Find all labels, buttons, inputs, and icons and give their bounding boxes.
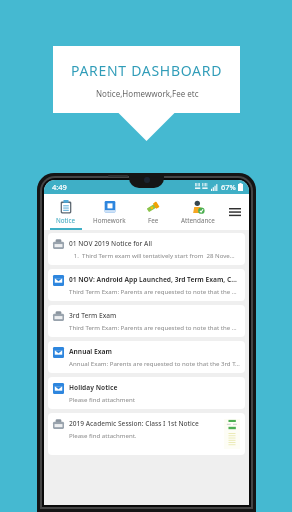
button[interactable]: 01 NOV 2019 Notice for All <box>48 233 245 265</box>
staticText: 01 NOV: Android App Launched, 3rd Term E… <box>69 275 240 284</box>
button[interactable]: Homework <box>87 194 131 230</box>
staticText: Annual Exam: Parents are requested to no… <box>69 359 240 367</box>
staticText: Fee <box>148 216 159 225</box>
staticText: Annual Exam <box>69 347 112 356</box>
staticText: 01 NOV 2019 Notice for All <box>69 239 153 248</box>
staticText: 3rd Term Exam <box>69 311 117 320</box>
button[interactable]: 2019 Academic Session: Class I 1st Notic… <box>48 413 245 455</box>
staticText: 4:49 <box>52 182 67 192</box>
staticText: Notice <box>56 216 76 225</box>
staticText: Third Term Exam: Parents are requested t… <box>69 323 240 331</box>
staticText: 2019 Academic Session: Class I 1st Notic… <box>69 419 199 428</box>
staticText: Notice,Homewwork,Fee etc <box>96 88 199 99</box>
button[interactable]: Fee <box>131 194 175 230</box>
staticText: 1. Third Term exam will tentatively star… <box>69 251 240 259</box>
staticText: 67% <box>221 182 236 192</box>
button[interactable]: Attendance <box>175 194 221 230</box>
button[interactable]: Annual Exam <box>48 341 245 373</box>
staticText: Holiday Notice <box>69 383 118 392</box>
button[interactable]: 3rd Term Exam <box>48 305 245 337</box>
staticText: Please find attachment <box>69 395 135 403</box>
staticText: Homework <box>93 216 126 225</box>
button[interactable]: 01 NOV: Android App Launched, 3rd Term E… <box>48 269 245 301</box>
button[interactable]: Notice <box>44 194 87 230</box>
staticText: PARENT DASHBOARD <box>71 61 223 80</box>
staticText: Third Term Exam: Parents are requested t… <box>69 287 240 295</box>
button[interactable]: Menu <box>221 194 249 230</box>
staticText: Please find attachment. <box>69 431 137 439</box>
staticText: Attendance <box>181 216 215 225</box>
button[interactable]: Holiday Notice <box>48 377 245 409</box>
